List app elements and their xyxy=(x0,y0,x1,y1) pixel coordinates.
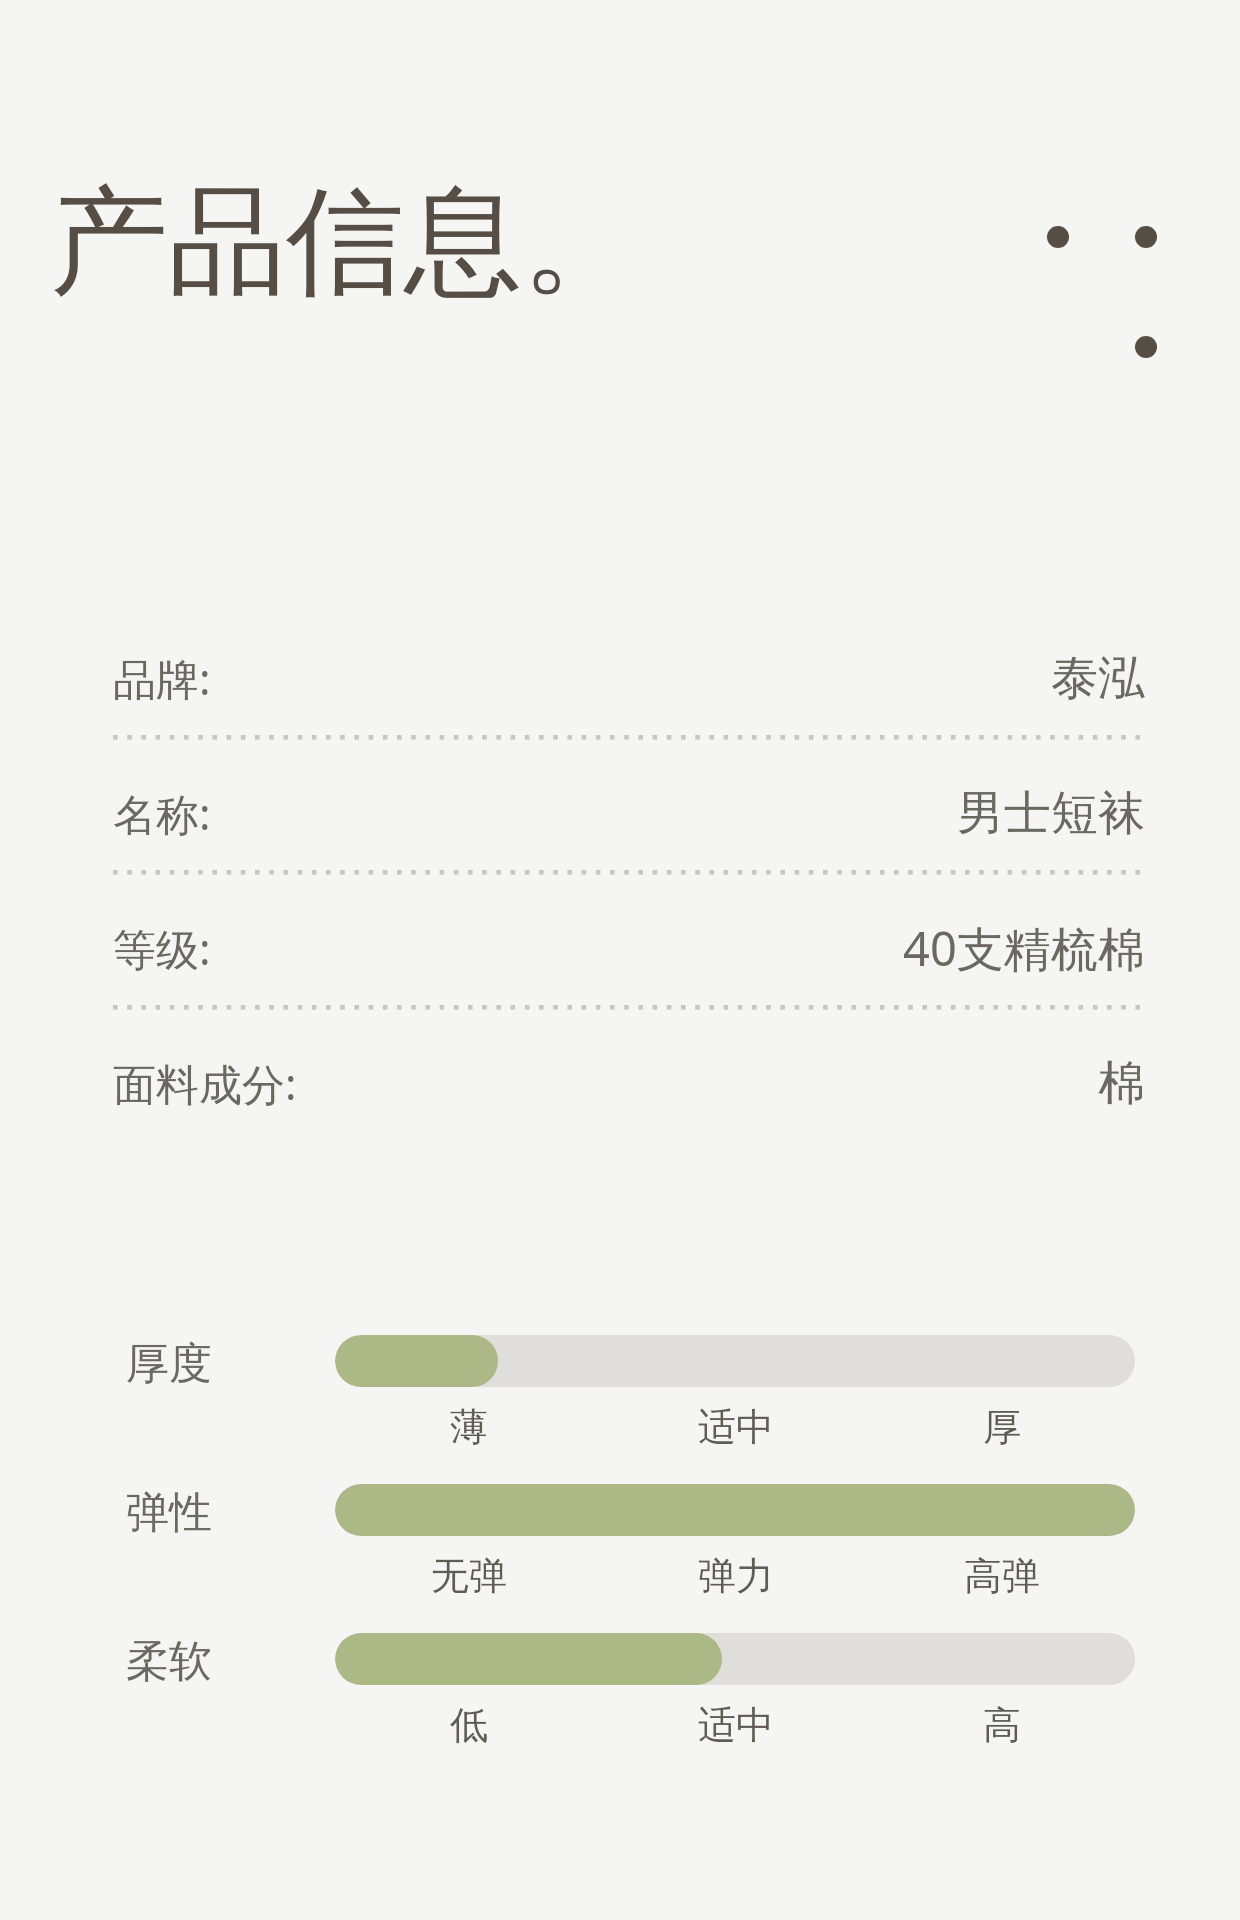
staticText: 泰泓 xyxy=(1051,649,1145,708)
button[interactable]: 等级: xyxy=(0,895,1240,1013)
button[interactable]: 面料成分: xyxy=(0,1030,1240,1148)
staticText: 名称: xyxy=(113,784,211,843)
button[interactable]: More options xyxy=(1028,200,1168,380)
staticText: 弹性 xyxy=(126,1486,212,1540)
staticText: 等级: xyxy=(113,919,211,978)
staticText: 适中 xyxy=(698,1403,774,1451)
staticText: 柔软 xyxy=(126,1635,212,1689)
button[interactable]: 柔软 xyxy=(0,1633,1240,1778)
staticText: 厚度 xyxy=(126,1337,212,1391)
staticText: 品牌: xyxy=(113,649,211,708)
staticText: 男士短袜 xyxy=(957,784,1145,843)
staticText: 产品信息。 xyxy=(50,168,640,317)
button[interactable]: 品牌: xyxy=(0,625,1240,743)
staticText: 适中 xyxy=(698,1701,774,1749)
button[interactable]: 弹性 xyxy=(0,1484,1240,1629)
staticText: 棉 xyxy=(1098,1054,1145,1113)
staticText: 高 xyxy=(983,1701,1021,1749)
staticText: 弹力 xyxy=(698,1552,774,1600)
staticText: 高弹 xyxy=(964,1552,1040,1600)
button[interactable]: 名称: xyxy=(0,760,1240,878)
staticText: 面料成分: xyxy=(113,1054,297,1113)
staticText: 无弹 xyxy=(431,1552,507,1600)
staticText: 40支精梳棉 xyxy=(903,916,1145,980)
button[interactable]: 厚度 xyxy=(0,1335,1240,1480)
staticText: 薄 xyxy=(450,1403,488,1451)
staticText: 低 xyxy=(450,1701,488,1749)
staticText: 厚 xyxy=(983,1403,1021,1451)
